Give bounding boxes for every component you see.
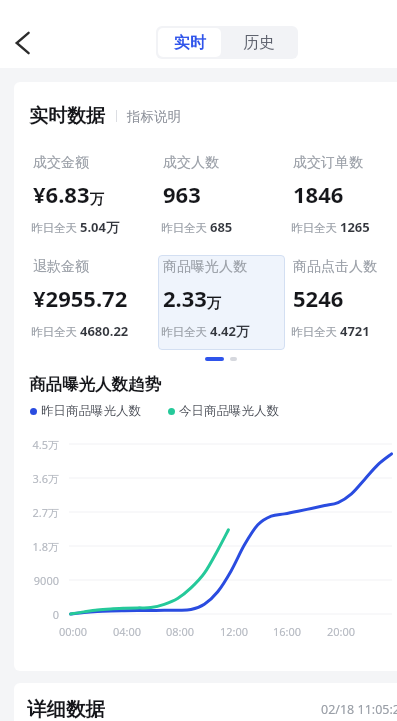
- staticText: 昨日全天: [291, 324, 340, 340]
- staticText: 685: [210, 218, 233, 236]
- button[interactable]: 商品曝光人数: [158, 255, 285, 350]
- staticText: 2.7万: [14, 505, 59, 520]
- staticText: 商品曝光人数: [163, 258, 247, 276]
- staticText: 退款金额: [33, 258, 89, 276]
- staticText: 今日商品曝光人数: [179, 403, 279, 419]
- staticText: 商品曝光人数趋势: [29, 374, 161, 395]
- staticText: ¥2955.72: [33, 283, 128, 313]
- staticText: 昨日全天: [291, 220, 340, 236]
- staticText: 0: [14, 607, 59, 622]
- staticText: 00:00: [53, 624, 93, 639]
- staticText: 963: [163, 179, 201, 209]
- staticText: 实时: [174, 33, 206, 53]
- staticText: 12:00: [214, 624, 254, 639]
- staticText: 1.8万: [14, 539, 59, 554]
- staticText: 2.33: [163, 283, 207, 313]
- staticText: 指标说明: [127, 108, 181, 125]
- staticText: 实时数据: [29, 104, 105, 128]
- staticText: 昨日全天: [31, 220, 80, 236]
- staticText: 4721: [340, 322, 370, 340]
- button[interactable]: 商品点击人数: [288, 255, 397, 350]
- staticText: 详细数据: [27, 697, 105, 721]
- staticText: 昨日全天: [31, 324, 80, 340]
- staticText: 万: [90, 190, 105, 208]
- button[interactable]: 历史: [221, 28, 296, 57]
- staticText: 3.6万: [14, 471, 59, 486]
- staticText: 历史: [243, 33, 275, 53]
- staticText: 万: [207, 294, 222, 312]
- staticText: 04:00: [107, 624, 147, 639]
- button[interactable]: 退款金额: [28, 255, 155, 350]
- staticText: 20:00: [321, 624, 361, 639]
- staticText: 昨日商品曝光人数: [41, 403, 141, 419]
- staticText: 5.04万: [80, 218, 119, 236]
- staticText: 08:00: [160, 624, 200, 639]
- staticText: 成交订单数: [293, 154, 363, 172]
- staticText: 商品点击人数: [293, 258, 377, 276]
- staticText: 1265: [340, 218, 370, 236]
- staticText: 1846: [293, 179, 344, 209]
- staticText: ¥6.83: [33, 179, 90, 209]
- staticText: 昨日全天: [161, 324, 210, 340]
- staticText: 9000: [14, 573, 59, 588]
- button[interactable]: 成交订单数: [288, 151, 397, 246]
- button[interactable]: 成交人数: [158, 151, 285, 246]
- staticText: 4.5万: [14, 437, 59, 452]
- staticText: 16:00: [267, 624, 307, 639]
- staticText: 成交人数: [163, 154, 219, 172]
- staticText: 成交金额: [33, 154, 89, 172]
- staticText: 4680.22: [80, 322, 129, 340]
- button[interactable]: 成交金额: [28, 151, 155, 246]
- staticText: 4.42万: [210, 322, 249, 340]
- button[interactable]: Back: [11, 32, 33, 54]
- staticText: 昨日全天: [161, 220, 210, 236]
- button[interactable]: 实时: [158, 28, 221, 57]
- staticText: 5246: [293, 283, 344, 313]
- staticText: 02/18 11:05:23: [321, 701, 397, 718]
